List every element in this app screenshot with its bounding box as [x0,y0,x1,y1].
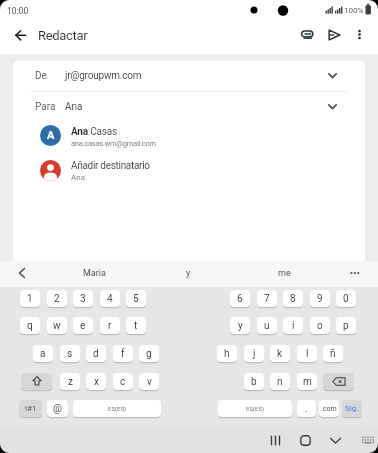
button[interactable]: 9 [310,290,330,307]
button[interactable]: c [113,373,133,390]
button[interactable]: ES(ES) [73,400,161,417]
staticText: q [27,320,33,332]
button[interactable] [344,263,366,283]
staticText: 9 [317,293,323,305]
button[interactable]: x [86,373,106,390]
staticText: ES(ES) [246,405,265,412]
button[interactable] [13,155,365,183]
button[interactable]: t [126,317,146,334]
staticText: p [343,320,349,332]
button[interactable]: r [100,317,120,334]
button[interactable]: 7 [257,290,277,307]
button[interactable] [323,373,354,390]
button[interactable]: me [254,263,314,283]
staticText: ana.casas.wm@gmail.com [71,139,156,148]
staticText: g [146,348,152,360]
button[interactable]: 6 [230,290,250,307]
button[interactable]: z [60,373,80,390]
staticText: Añadir destinatario [71,160,150,172]
button[interactable]: l [297,345,317,362]
button[interactable] [21,373,52,390]
button[interactable]: .com [319,400,339,417]
staticText: j [253,348,256,360]
staticText: s [67,348,73,360]
button[interactable]: 1 [20,290,40,307]
button[interactable] [13,92,365,118]
button[interactable]: h [217,345,237,362]
staticText: A [47,129,55,142]
button[interactable]: o [310,317,330,334]
button[interactable]: i [283,317,303,334]
button[interactable] [266,431,285,450]
button[interactable]: !#1 [19,400,42,417]
staticText: 100% [344,6,364,15]
staticText: u [264,320,270,332]
staticText: 3 [80,293,86,305]
button[interactable]: f [113,345,133,362]
staticText: me [278,268,291,279]
staticText: x [94,376,99,388]
button[interactable] [10,23,35,48]
button[interactable]: 3 [73,290,93,307]
staticText: f [121,348,125,360]
button[interactable]: n [270,373,290,390]
button[interactable]: y [230,317,250,334]
staticText: De [35,70,47,82]
button[interactable]: Sig. [342,400,362,417]
button[interactable]: . [297,400,316,417]
staticText: ñ [330,348,336,360]
staticText: Ana [65,101,83,113]
staticText: .com [321,405,337,413]
button[interactable] [349,24,369,46]
button[interactable]: p [336,317,356,334]
button[interactable]: ES(ES) [218,400,292,417]
button[interactable]: a [33,345,53,362]
button[interactable]: @ [47,400,68,417]
button[interactable]: w [47,317,67,334]
button[interactable]: b [244,373,264,390]
button[interactable]: m [297,373,317,390]
staticText: h [224,348,230,360]
button[interactable]: Maria [64,263,124,283]
button[interactable] [296,431,315,450]
button[interactable]: ñ [323,345,343,362]
staticText: i [292,320,295,332]
button[interactable]: j [244,345,264,362]
button[interactable]: 5 [126,290,146,307]
button[interactable]: e [73,317,93,334]
staticText: e [80,320,86,332]
button[interactable] [326,431,345,450]
button[interactable]: v [139,373,159,390]
staticText: v [147,376,152,388]
button[interactable]: q [20,317,40,334]
button[interactable]: d [86,345,106,362]
button[interactable] [325,24,347,46]
button[interactable]: u [257,317,277,334]
button[interactable]: 2 [47,290,67,307]
button[interactable] [13,61,365,91]
button[interactable]: g [139,345,159,362]
button[interactable] [356,431,377,450]
staticText: w [53,320,61,332]
staticText: 7 [264,293,270,305]
staticText: 4 [107,293,113,305]
staticText: 1 [27,293,33,305]
staticText: Sig. [345,404,359,413]
staticText: k [277,348,283,360]
button[interactable]: y [158,263,218,283]
staticText: z [68,376,73,388]
button[interactable]: 4 [100,290,120,307]
staticText: a [40,348,46,360]
button[interactable] [12,263,32,283]
button[interactable]: s [60,345,80,362]
button[interactable] [13,121,365,149]
button[interactable] [296,24,318,46]
staticText: 10:00 [7,6,29,16]
staticText: y [186,268,191,279]
button[interactable]: 8 [283,290,303,307]
staticText: Ana [71,173,85,182]
staticText: d [93,348,99,360]
staticText: 8 [290,293,296,305]
button[interactable]: 0 [336,290,356,307]
button[interactable]: k [270,345,290,362]
